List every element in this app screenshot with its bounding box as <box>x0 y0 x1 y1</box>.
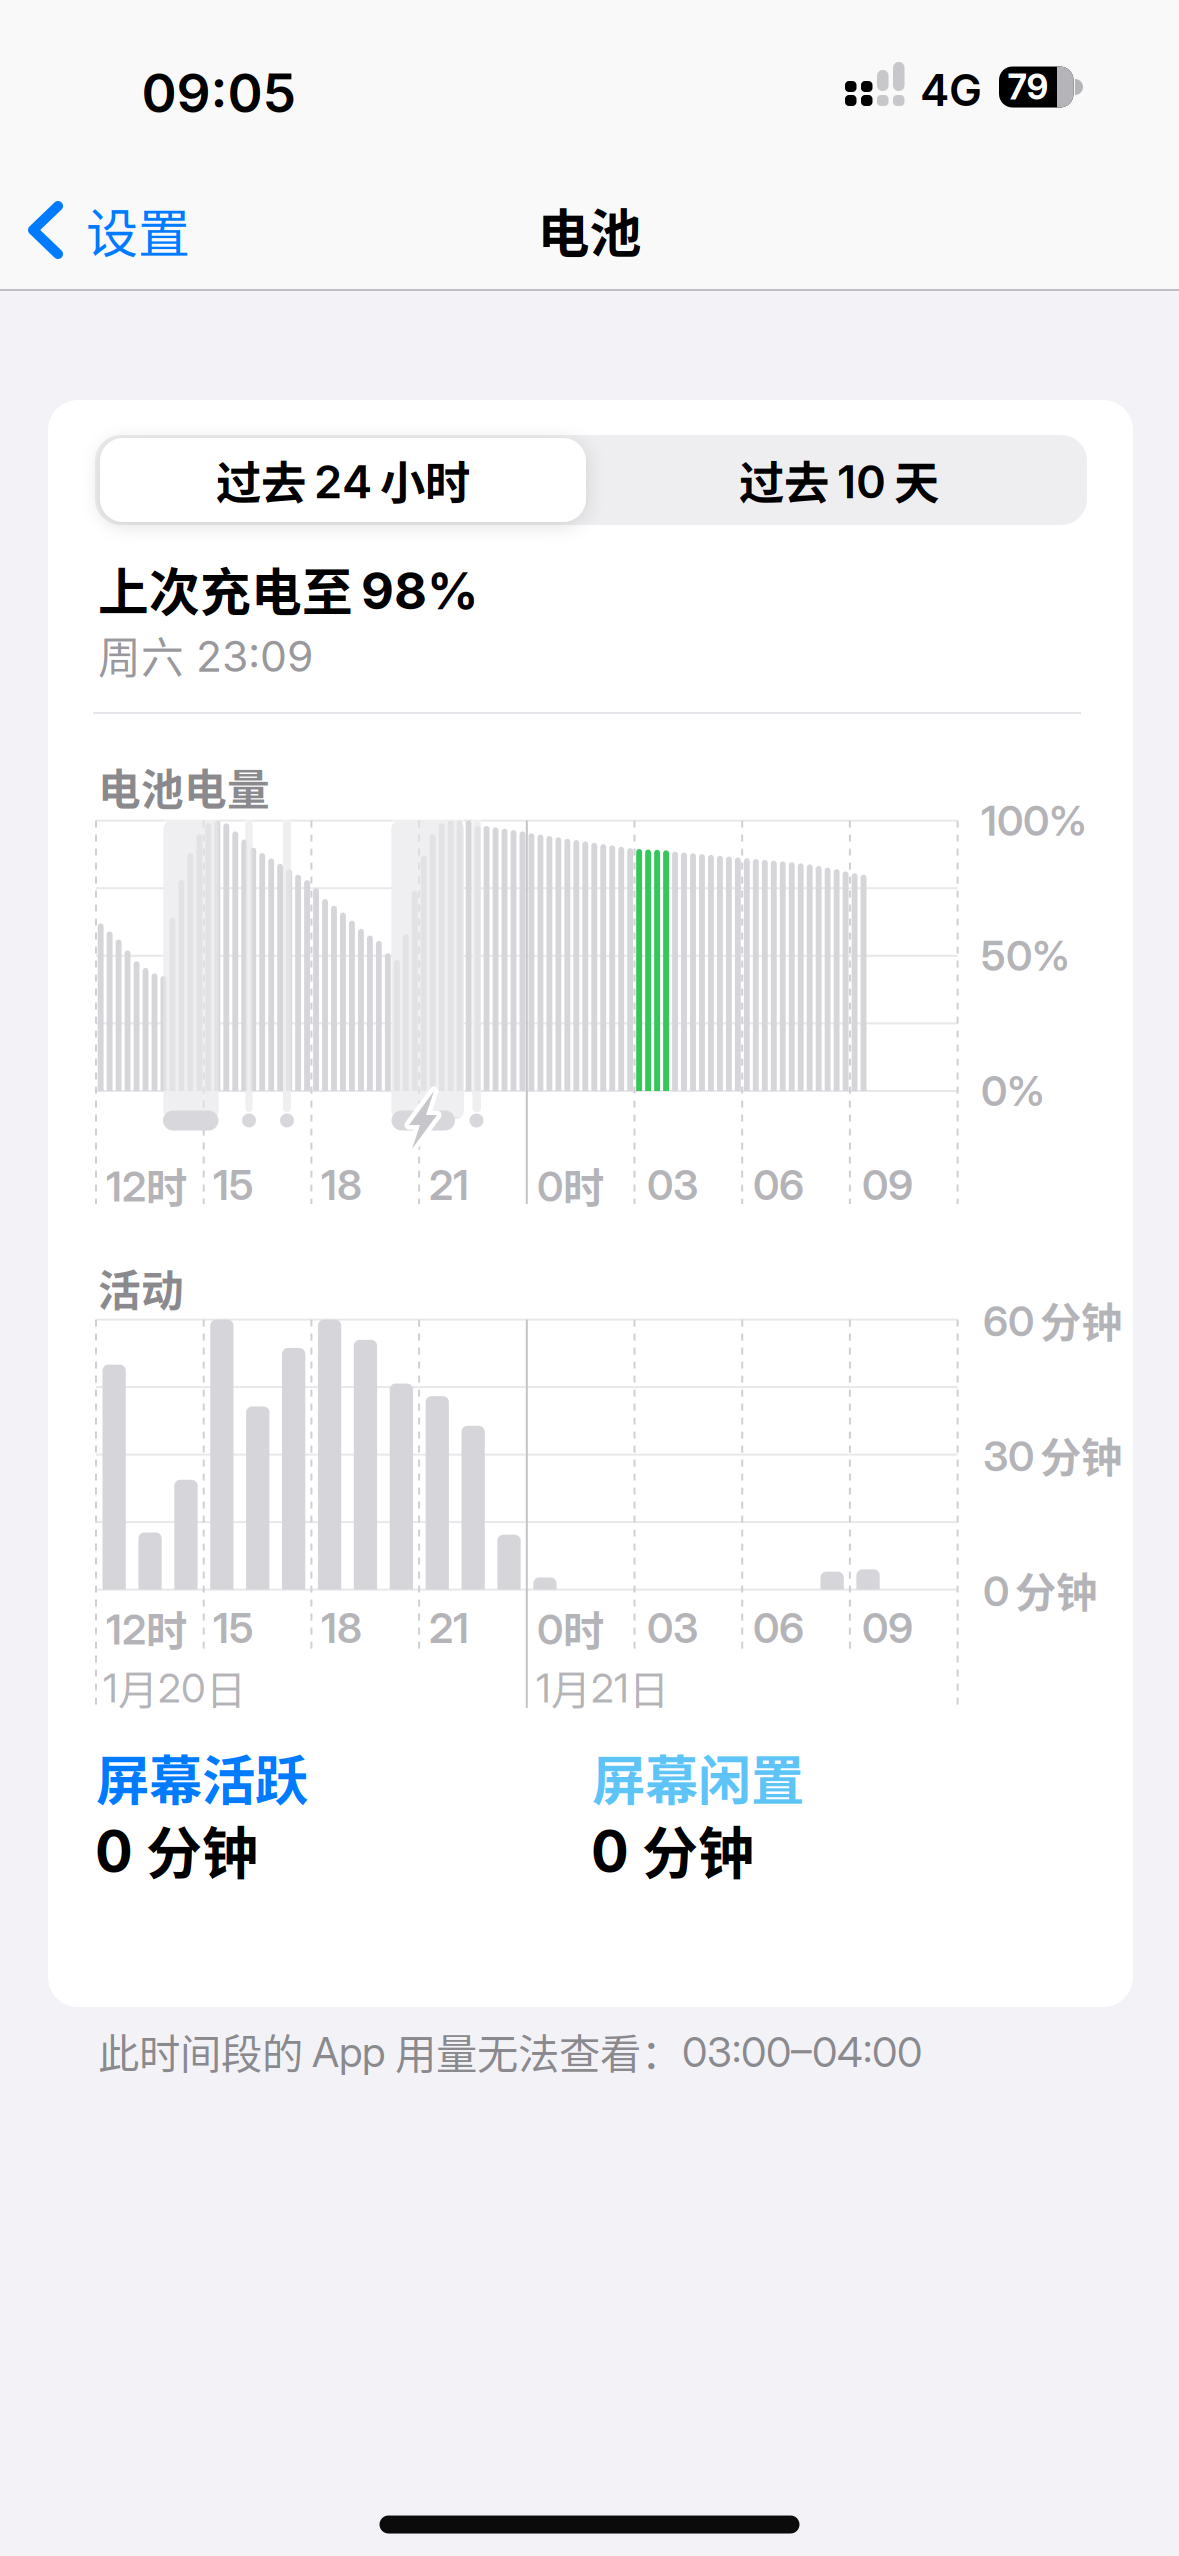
staticText: 21 <box>429 1604 469 1652</box>
button[interactable]: 屏幕闲置 <box>592 1739 804 1815</box>
staticText: 0时 <box>537 1599 604 1657</box>
staticText: 21 <box>429 1161 469 1209</box>
staticText: 06 <box>753 1161 804 1209</box>
button[interactable]: 设置 <box>28 193 190 267</box>
staticText: 15 <box>213 1604 254 1652</box>
staticText: 0% <box>981 1067 1045 1115</box>
staticText: 03 <box>647 1161 698 1209</box>
staticText: 30 分钟 <box>983 1425 1122 1484</box>
staticText: 03 <box>647 1604 698 1652</box>
staticText: 18 <box>321 1604 362 1652</box>
staticText: 09 <box>862 1161 913 1209</box>
staticText: 屏幕活跃 <box>96 1739 308 1815</box>
staticText: 0时 <box>537 1156 604 1214</box>
staticText: 屏幕闲置 <box>592 1739 804 1815</box>
staticText: 0 分钟 <box>591 1809 754 1889</box>
staticText: 1月20日 <box>103 1659 246 1715</box>
staticText: 电池 <box>537 193 641 267</box>
staticText: 12时 <box>106 1156 187 1214</box>
staticText: 1月21日 <box>536 1659 669 1715</box>
staticText: 06 <box>753 1604 804 1652</box>
staticText: 0 分钟 <box>95 1809 258 1889</box>
staticText: 60 分钟 <box>983 1290 1122 1349</box>
staticText: 18 <box>321 1161 362 1209</box>
staticText: 过去 10 天 <box>739 448 939 512</box>
staticText: 09:05 <box>141 61 296 124</box>
staticText: 100% <box>981 796 1087 845</box>
staticText: 上次充电至 98% <box>98 553 478 625</box>
staticText: 设置 <box>86 193 190 267</box>
staticText: 12时 <box>106 1599 187 1657</box>
staticText: 过去 24 小时 <box>216 448 470 512</box>
button[interactable]: 屏幕活跃 <box>96 1739 308 1815</box>
staticText: 4G <box>920 64 982 116</box>
button[interactable]: 过去 10 天 <box>591 435 1087 525</box>
staticText: 79 <box>1007 67 1048 107</box>
staticText: 此时间段的 App 用量无法查看：03:00–04:00 <box>98 2022 922 2080</box>
staticText: 09 <box>862 1604 913 1652</box>
staticText: 50% <box>981 931 1070 980</box>
button[interactable]: 过去 24 小时 <box>95 435 591 525</box>
staticText: 15 <box>213 1161 254 1209</box>
staticText: 活动 <box>98 1258 184 1318</box>
staticText: 电池电量 <box>98 757 270 817</box>
staticText: 0 分钟 <box>983 1560 1097 1619</box>
staticText: 周六 23:09 <box>98 625 313 685</box>
